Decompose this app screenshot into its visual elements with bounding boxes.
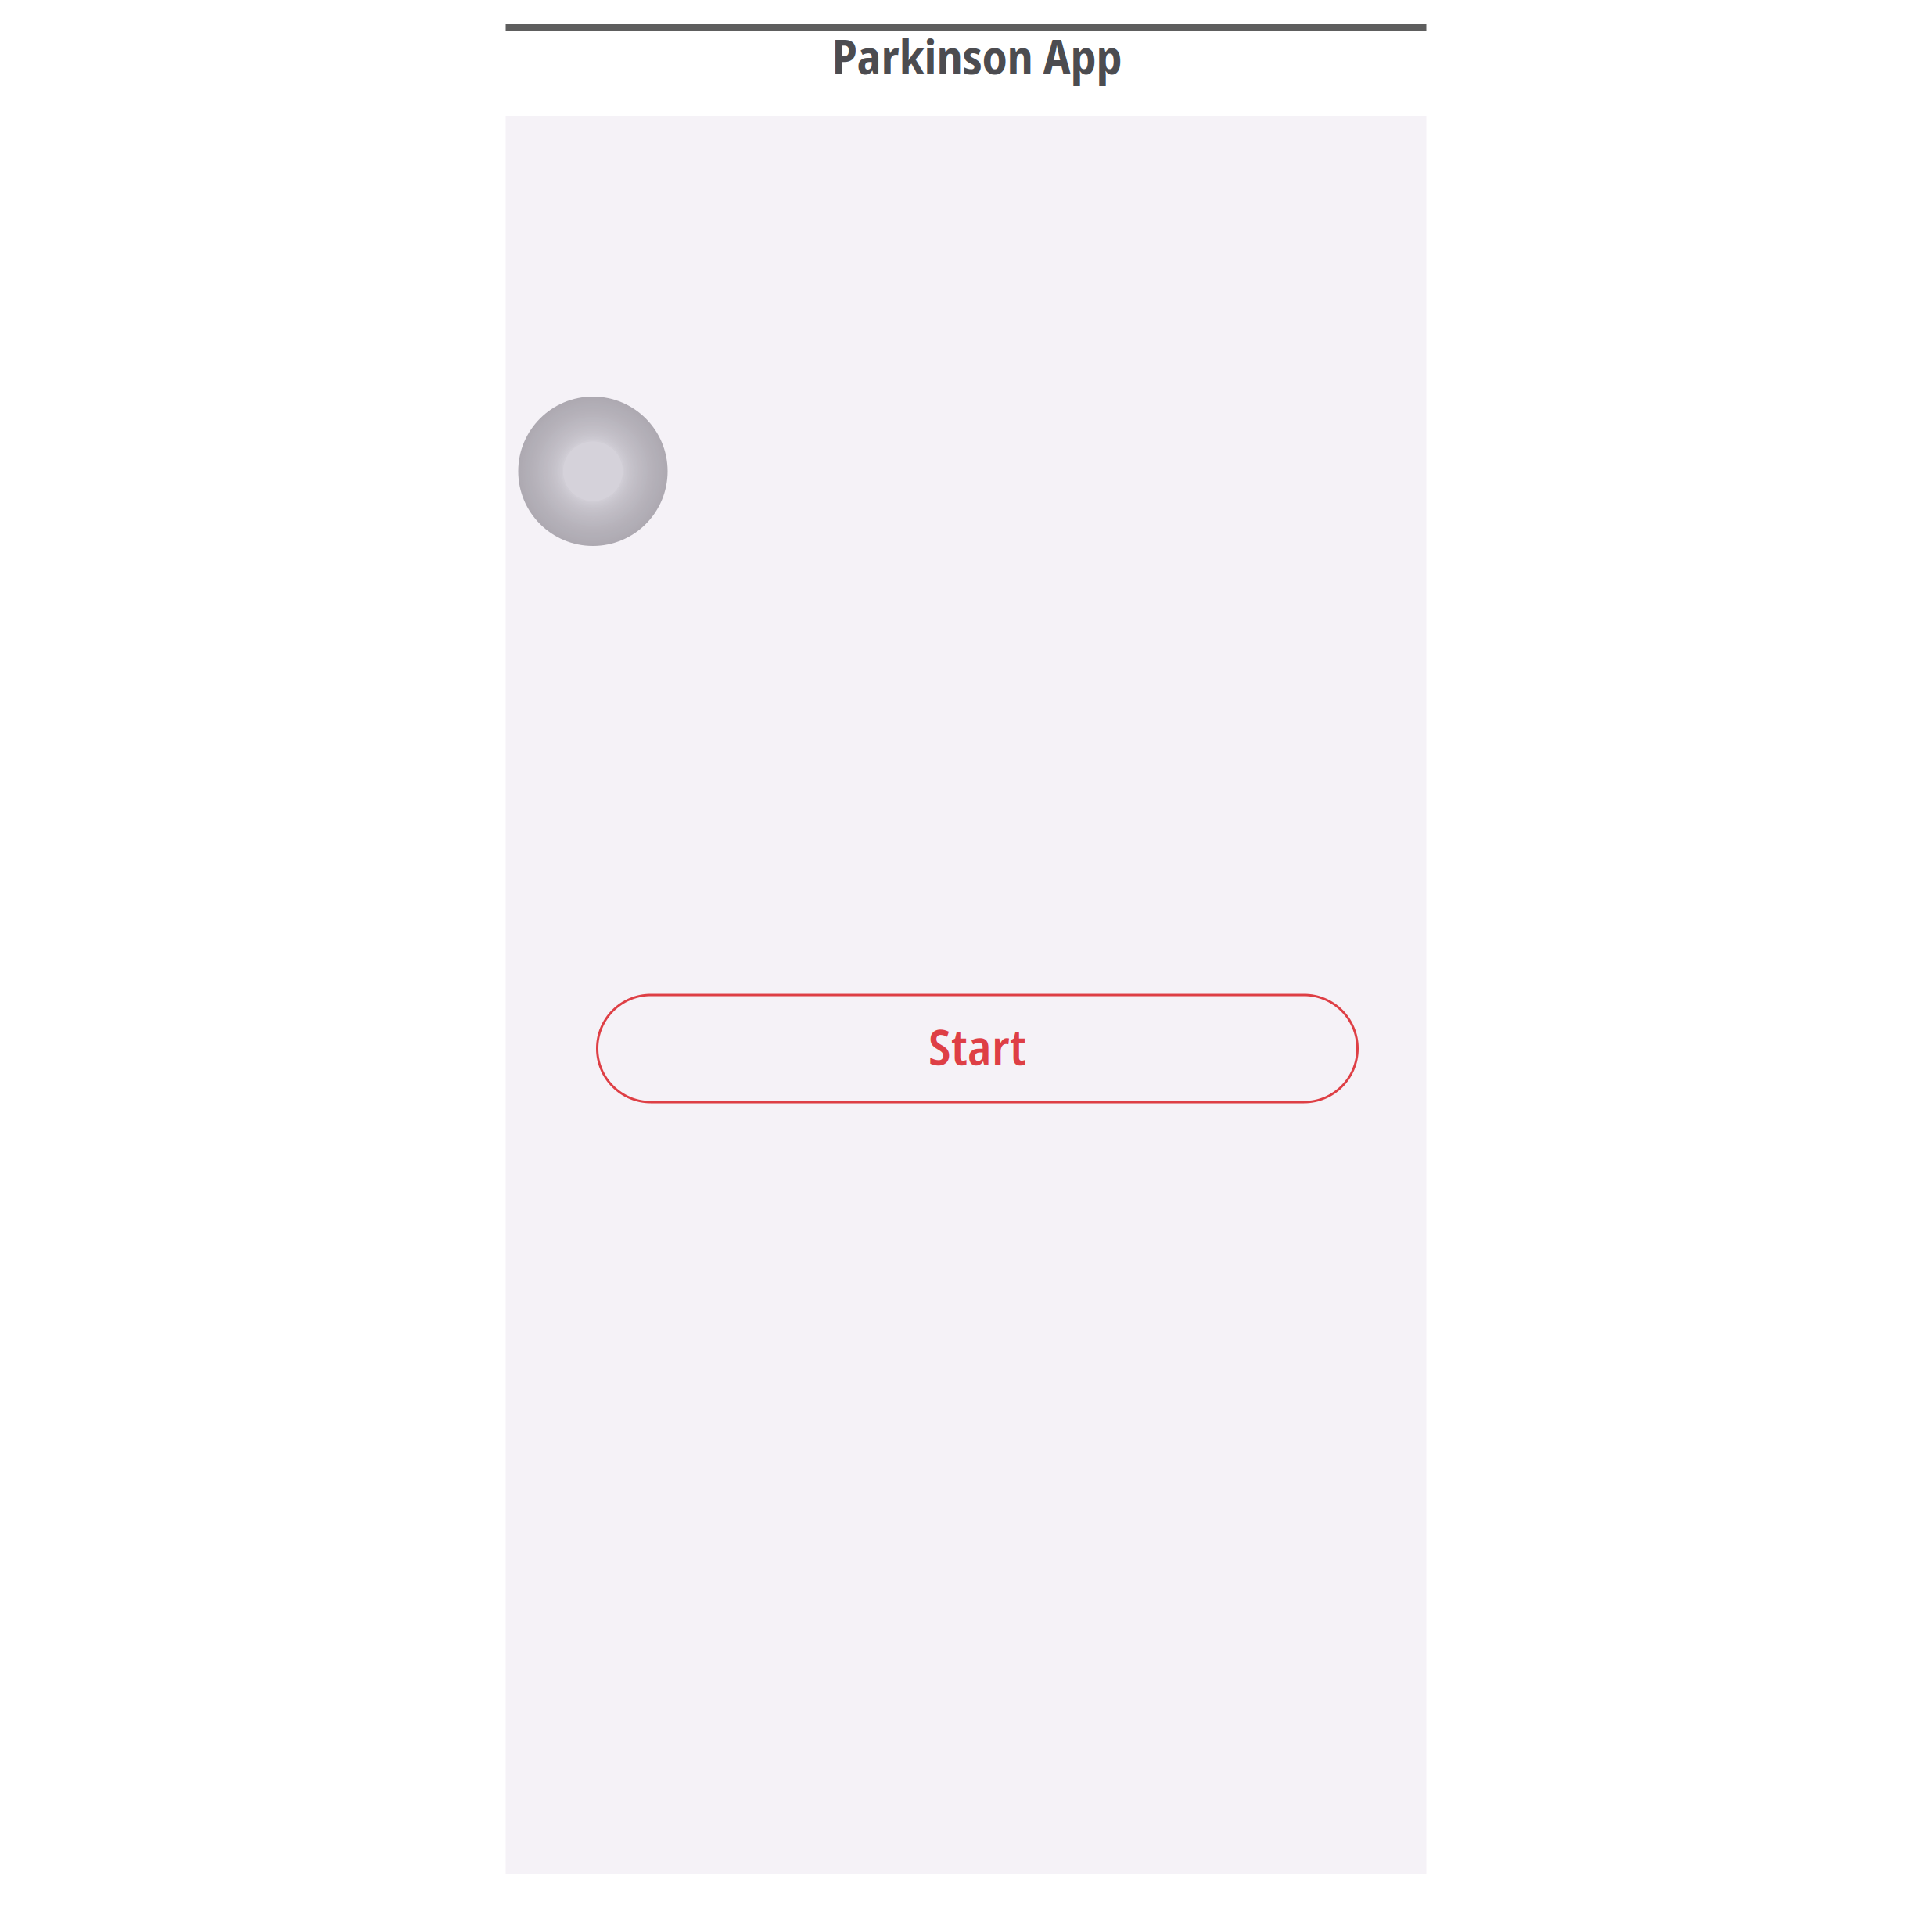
button[interactable]: Start [597, 995, 1357, 1102]
staticText: Parkinson App [832, 31, 1122, 80]
staticText: Start [928, 1013, 1026, 1080]
